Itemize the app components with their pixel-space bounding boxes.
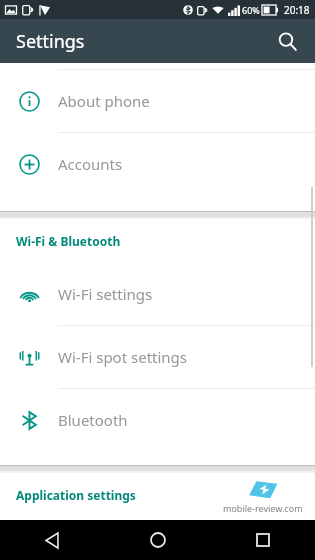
button[interactable]: Wi-Fi spot settings (0, 326, 315, 388)
staticText: Application settings (16, 487, 136, 503)
button[interactable]: Wi-Fi settings (0, 263, 315, 325)
staticText: Settings (16, 29, 85, 54)
staticText: Bluetooth (58, 410, 128, 430)
button[interactable]: Search (269, 23, 305, 59)
staticText: About phone (58, 91, 150, 111)
staticText: mobile-review.com (223, 502, 303, 514)
staticText: 60% (242, 4, 260, 16)
button[interactable]: Recents (210, 520, 315, 560)
staticText: Accounts (58, 154, 123, 174)
button[interactable]: Accounts (0, 133, 315, 195)
staticText: Wi-Fi spot settings (58, 347, 188, 367)
staticText: Wi-Fi settings (58, 284, 153, 304)
button[interactable]: Back (0, 520, 105, 560)
button[interactable]: Bluetooth (0, 389, 315, 451)
button[interactable]: About phone (0, 70, 315, 132)
button[interactable]: Home (105, 520, 210, 560)
staticText: Wi-Fi & Bluetooth (16, 233, 121, 249)
staticText: 20:18 (284, 3, 310, 17)
